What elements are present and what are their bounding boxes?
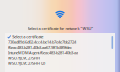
staticText: Select a certificate [12,34,43,39]
staticText: IntuneMDMAgent-f6eac483-b281-40b3-aa [8,50,78,55]
staticText: f6eac483-b281-40b3-aa67-981b389fdec [8,45,72,50]
button[interactable]: Select a certificate [5,34,115,39]
button[interactable]: f6eac483-b281-40b3-aa67-981b389fdec [5,45,115,50]
staticText: Select a certificate for network “WSU” [27,26,92,31]
staticText: WSU-YJLVC27SHH [8,55,40,61]
button[interactable]: 730ad89d-6d02-4cc4-be14-b7e4e7bb2724 [5,39,115,45]
staticText: 730ad89d-6d02-4cc4-be14-b7e4e7bb2724 [8,39,76,45]
staticText: WSU-YJLVC27SHH (2) [8,61,45,66]
button[interactable]: WSU-YJLVC27SHH [5,55,115,61]
button[interactable]: IntuneMDMAgent-f6eac483-b281-40b3-aa [5,50,115,55]
button[interactable]: WSU-YJLVC27SHH (2) [5,61,115,66]
